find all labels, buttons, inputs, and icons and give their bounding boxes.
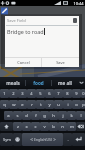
staticText: Cancel [17,60,30,65]
staticText: h [52,113,55,119]
button[interactable]: o [72,100,81,109]
staticText: meals [6,80,20,86]
button[interactable]: k [67,111,76,120]
button[interactable]: t [36,100,45,109]
staticText: m [70,124,74,130]
staticText: j [62,113,64,119]
staticText: d [25,113,28,119]
button[interactable]: Emoji [13,133,22,146]
button[interactable]: . [63,133,72,146]
staticText: 9 [75,91,78,96]
staticText: 7 [57,91,60,96]
button[interactable]: e [18,100,27,109]
button[interactable]: f [31,111,40,120]
button[interactable]: English(US) [22,133,63,146]
staticText: y [48,102,51,108]
button[interactable]: m [67,122,76,131]
button[interactable]: y [45,100,54,109]
staticText: i [67,102,69,108]
staticText: 8 [66,91,69,96]
button[interactable]: b [49,122,58,131]
button[interactable]: j [58,111,67,120]
button[interactable]: Shift [0,122,13,131]
staticText: Sym [3,137,11,142]
button[interactable]: Enter [72,133,85,146]
button[interactable]: 5 [36,89,45,98]
staticText: z [17,124,19,130]
staticText: o [75,102,78,108]
button[interactable]: a [4,111,13,120]
staticText: . [67,137,69,143]
staticText: 6 [48,91,51,96]
staticText: 4 [30,91,33,96]
staticText: c [34,124,37,130]
button[interactable]: u [54,100,63,109]
button[interactable]: z [13,122,22,131]
button[interactable]: Save [42,58,79,67]
button[interactable]: food [26,77,51,88]
staticText: Save Field [7,18,26,23]
button[interactable]: g [40,111,49,120]
staticText: Save [56,60,65,65]
staticText: food [33,80,44,86]
staticText: n [61,124,64,130]
button[interactable]: w [9,100,18,109]
staticText: w [12,102,16,108]
button[interactable]: d [22,111,31,120]
staticText: 2 [12,91,15,96]
button[interactable]: 4 [27,89,36,98]
staticText: p [82,102,85,108]
staticText: t [40,102,42,108]
staticText: r [31,102,33,108]
button[interactable]: n [58,122,67,131]
button[interactable]: 2 [9,89,18,98]
staticText: 3 [21,91,24,96]
staticText: f [35,113,37,119]
staticText: v [43,124,46,130]
button[interactable]: r [27,100,36,109]
staticText: 10:44 [73,1,84,6]
button[interactable]: meals [0,77,25,88]
staticText: q [3,102,6,108]
button[interactable]: Cancel [5,58,41,67]
staticText: k [70,113,73,119]
button[interactable]: 8 [63,89,72,98]
button[interactable]: Sym [0,133,13,146]
staticText: 1 [3,91,6,96]
staticText: l [80,113,82,119]
staticText: e [21,102,24,108]
button[interactable]: s [13,111,22,120]
button[interactable]: 3 [18,89,27,98]
staticText: b [52,124,55,130]
button[interactable]: l [76,111,85,120]
button[interactable]: 7 [54,89,63,98]
button[interactable]: q [0,100,9,109]
button[interactable]: c [31,122,40,131]
button[interactable]: p [81,100,85,109]
button[interactable]: h [49,111,58,120]
staticText: g [43,113,46,119]
staticText: 0 [82,91,85,96]
button[interactable]: me all [52,77,77,88]
staticText: 5 [39,91,42,96]
staticText: English(US) [34,137,52,142]
button[interactable]: 6 [45,89,54,98]
button[interactable]: Backspace [76,122,85,131]
button[interactable]: v [40,122,49,131]
staticText: me all [58,80,72,86]
staticText: a [7,113,10,119]
button[interactable]: i [63,100,72,109]
button[interactable]: 9 [72,89,81,98]
button[interactable]: 1 [0,89,9,98]
staticText: Bridge to road [7,28,44,35]
button[interactable]: More suggestions [77,77,85,88]
button[interactable]: Clear text [73,18,77,23]
staticText: x [25,124,28,130]
staticText: u [57,102,60,108]
button[interactable]: 0 [81,89,85,98]
staticText: s [16,113,19,119]
button[interactable]: x [22,122,31,131]
